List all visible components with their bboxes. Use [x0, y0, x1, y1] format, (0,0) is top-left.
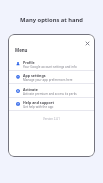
staticText: Profile — [23, 60, 35, 65]
staticText: Activate — [23, 87, 38, 92]
button[interactable]: Profile — [8, 57, 95, 70]
staticText: Version 2.4.1 — [8, 117, 95, 121]
button[interactable]: App settings — [8, 70, 95, 83]
staticText: App settings — [23, 73, 46, 78]
button[interactable]: Help and support — [8, 97, 95, 110]
staticText: Your Google account settings and info — [23, 65, 77, 69]
staticText: Menu — [15, 47, 28, 53]
staticText: Help and support — [23, 100, 54, 105]
staticText: Many options at hand — [0, 16, 103, 24]
button[interactable]: Close — [82, 38, 92, 48]
staticText: Get help with the app — [23, 105, 54, 109]
button[interactable]: Activate — [8, 84, 95, 97]
staticText: Activate premium and access its perks — [23, 92, 77, 96]
staticText: Manage your app preferences here — [23, 78, 73, 82]
